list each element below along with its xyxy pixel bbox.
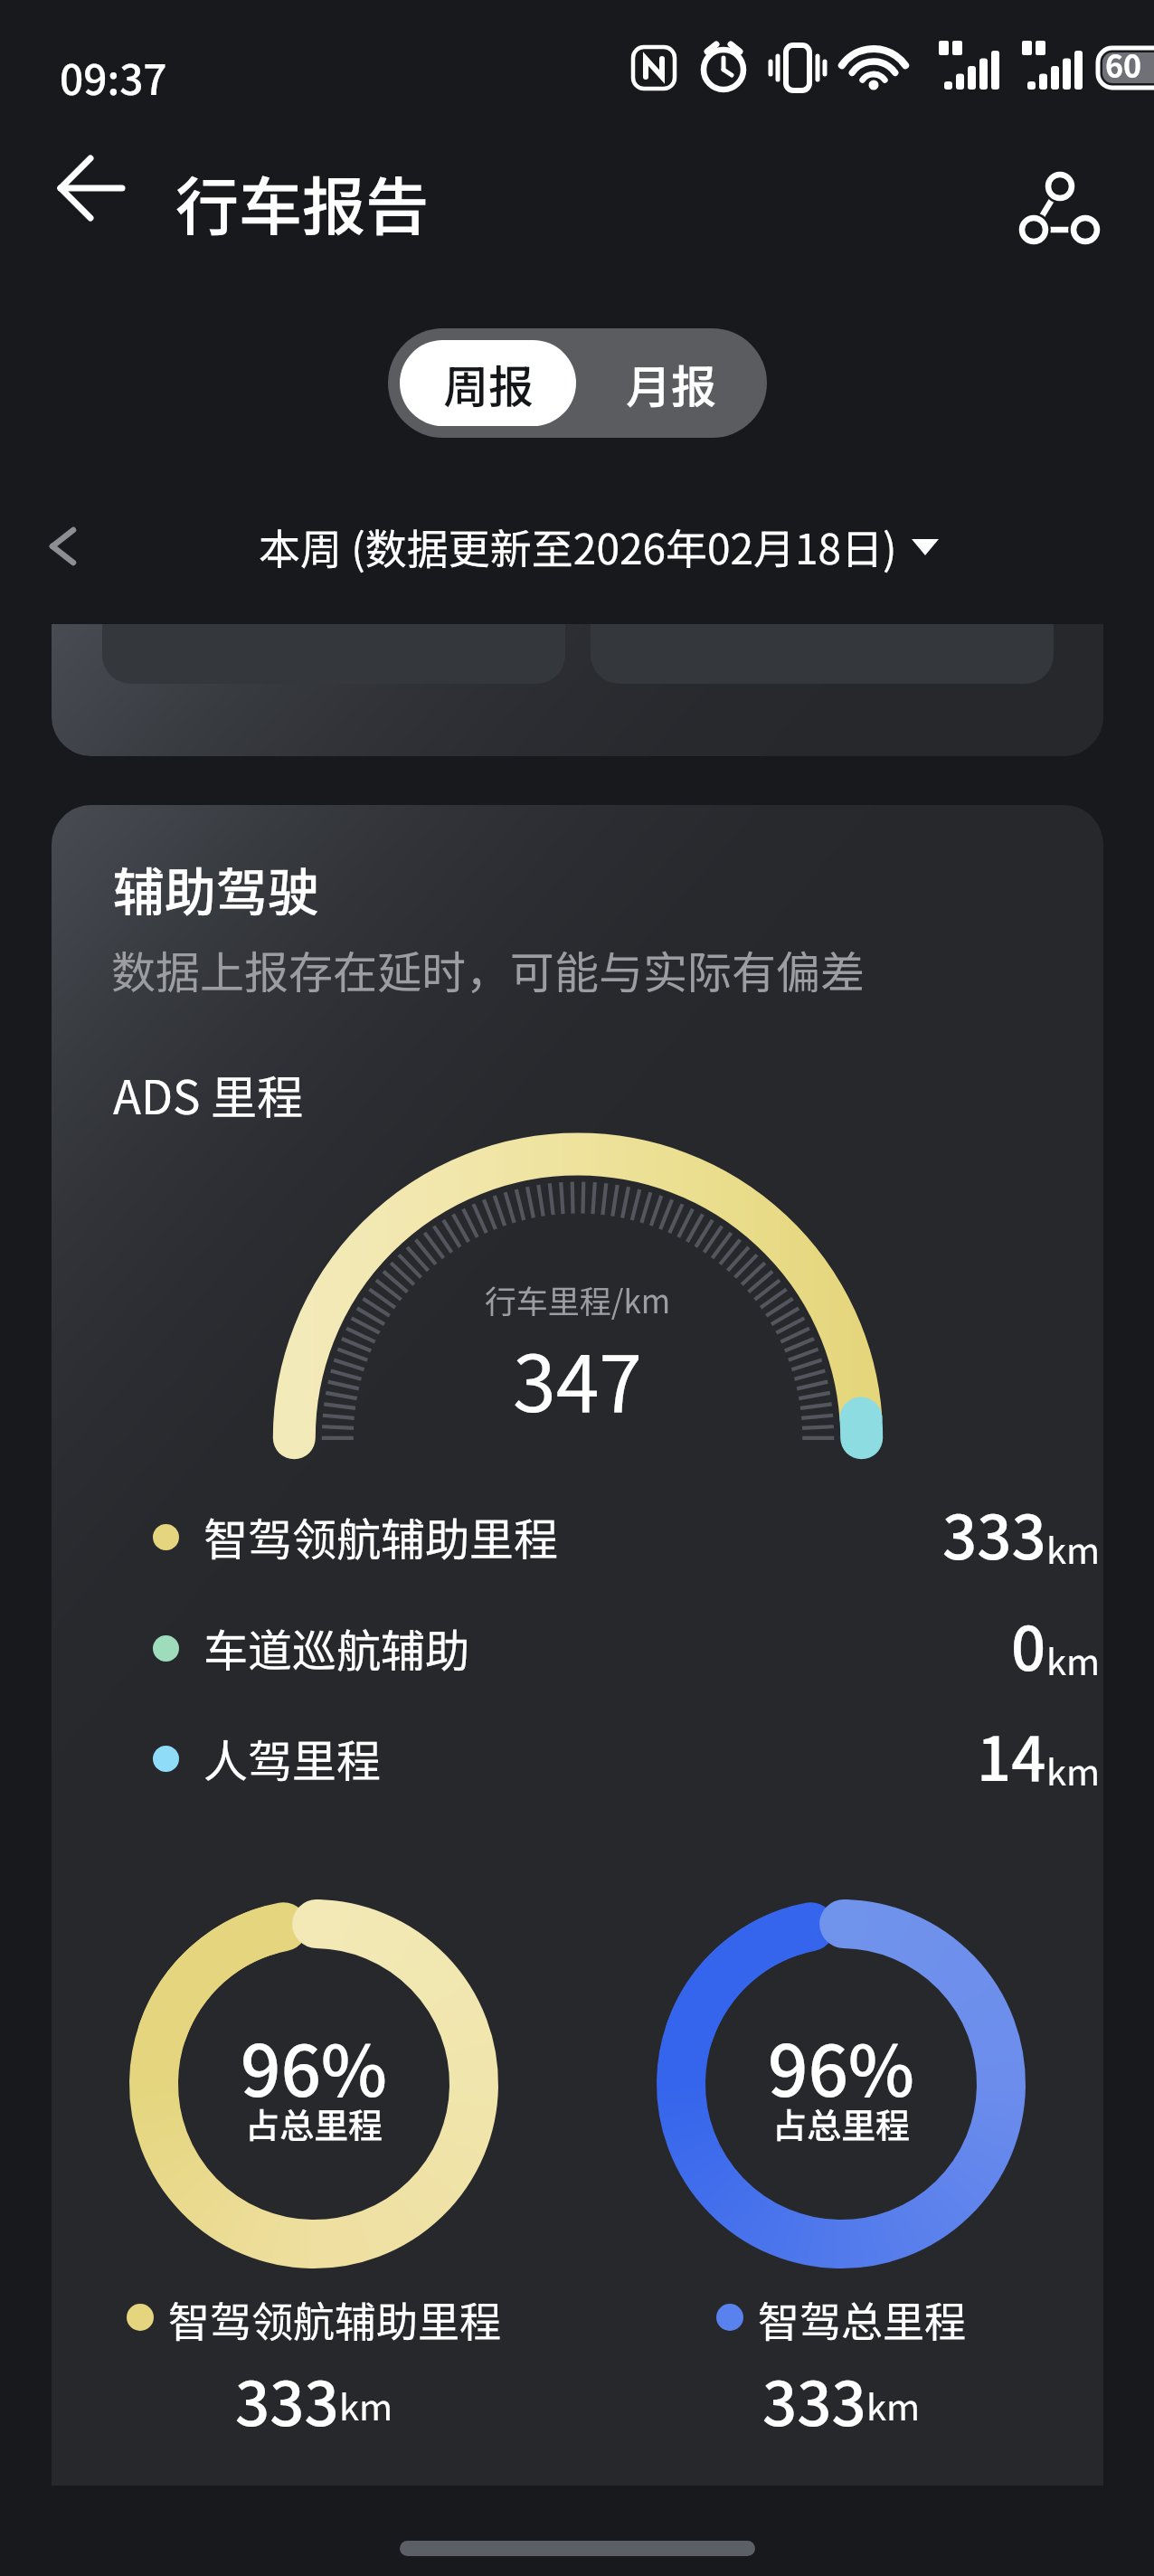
- staticText: km: [339, 2379, 393, 2431]
- staticText: 辅助驾驶: [113, 851, 319, 926]
- staticText: 智驾总里程: [758, 2289, 966, 2345]
- staticText: km: [1046, 1744, 1101, 1796]
- button[interactable]: 智驾领航辅助里程: [127, 2289, 501, 2345]
- staticText: 占总里程: [660, 2098, 1022, 2148]
- staticText: 60: [1105, 43, 1142, 87]
- staticText: 0: [1011, 1600, 1046, 1688]
- staticText: 行车报告: [175, 156, 429, 248]
- staticText: 14: [977, 1710, 1046, 1798]
- button[interactable]: 智驾总里程: [716, 2289, 966, 2345]
- staticText: km: [1046, 1522, 1101, 1575]
- staticText: 333: [235, 2355, 339, 2433]
- staticText: 车道巡航辅助: [203, 1615, 470, 1680]
- button[interactable]: 本周 (数据更新至2026年02月18日): [259, 516, 939, 577]
- staticText: 人驾里程: [203, 1726, 382, 1790]
- button[interactable]: Previous period: [32, 511, 102, 582]
- button[interactable]: 人驾里程: [101, 1703, 1103, 1814]
- staticText: 月报: [626, 351, 716, 416]
- staticText: 智驾领航辅助里程: [203, 1504, 559, 1568]
- staticText: 数据上报存在延时，可能与实际有偏差: [111, 937, 865, 1001]
- staticText: 本周 (数据更新至2026年02月18日): [259, 516, 897, 577]
- staticText: ADS 里程: [113, 1061, 303, 1128]
- staticText: 智驾领航辅助里程: [168, 2289, 501, 2345]
- staticText: 96%: [133, 2015, 495, 2117]
- staticText: 333: [942, 1489, 1046, 1577]
- staticText: 占总里程: [133, 2098, 495, 2148]
- button[interactable]: 智驾领航辅助里程: [101, 1482, 1103, 1592]
- staticText: km: [866, 2379, 921, 2431]
- button[interactable]: Back: [43, 156, 138, 221]
- staticText: 333: [762, 2355, 866, 2433]
- staticText: 行车里程/km: [52, 1276, 1103, 1322]
- staticText: 347: [52, 1321, 1103, 1435]
- button[interactable]: Share: [1011, 154, 1102, 226]
- staticText: 09:37: [60, 47, 167, 108]
- button[interactable]: 月报: [578, 328, 764, 438]
- staticText: km: [1046, 1634, 1101, 1686]
- staticText: 周报: [443, 351, 534, 416]
- staticText: 96%: [660, 2015, 1022, 2117]
- button[interactable]: 周报: [400, 340, 576, 426]
- button[interactable]: 车道巡航辅助: [101, 1593, 1103, 1703]
